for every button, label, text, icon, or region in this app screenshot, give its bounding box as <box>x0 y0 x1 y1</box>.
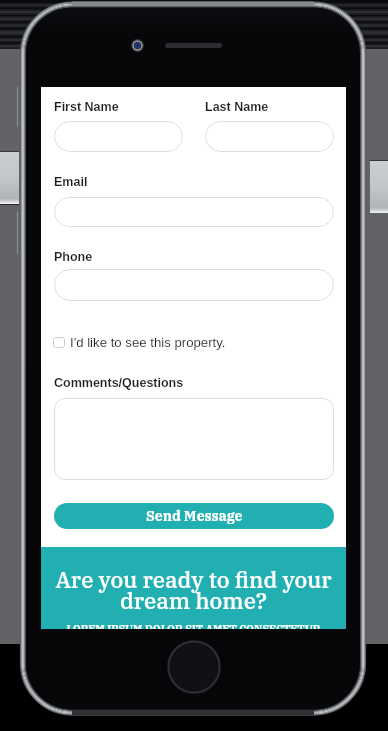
staticText: Send Message <box>146 507 243 525</box>
button[interactable] <box>205 121 334 152</box>
staticText: Comments/Questions <box>54 376 184 390</box>
staticText: Phone <box>54 250 93 264</box>
staticText: Last Name <box>205 100 269 114</box>
button[interactable] <box>54 197 334 227</box>
staticText: Are you ready to find your dream home? <box>41 565 346 615</box>
other: Home <box>167 640 221 694</box>
other: Front camera <box>131 39 144 52</box>
staticText: First Name <box>54 100 119 114</box>
button[interactable] <box>54 269 334 301</box>
button[interactable]: I'd like to see this property. <box>53 335 226 350</box>
staticText: LOREM IPSUM DOLOR SIT AMET CONSECTETUR <box>41 622 346 629</box>
button[interactable]: Send Message <box>54 503 334 529</box>
button[interactable] <box>54 121 183 152</box>
staticText: I'd like to see this property. <box>70 335 226 350</box>
button[interactable] <box>54 398 334 480</box>
staticText: Email <box>54 175 88 189</box>
